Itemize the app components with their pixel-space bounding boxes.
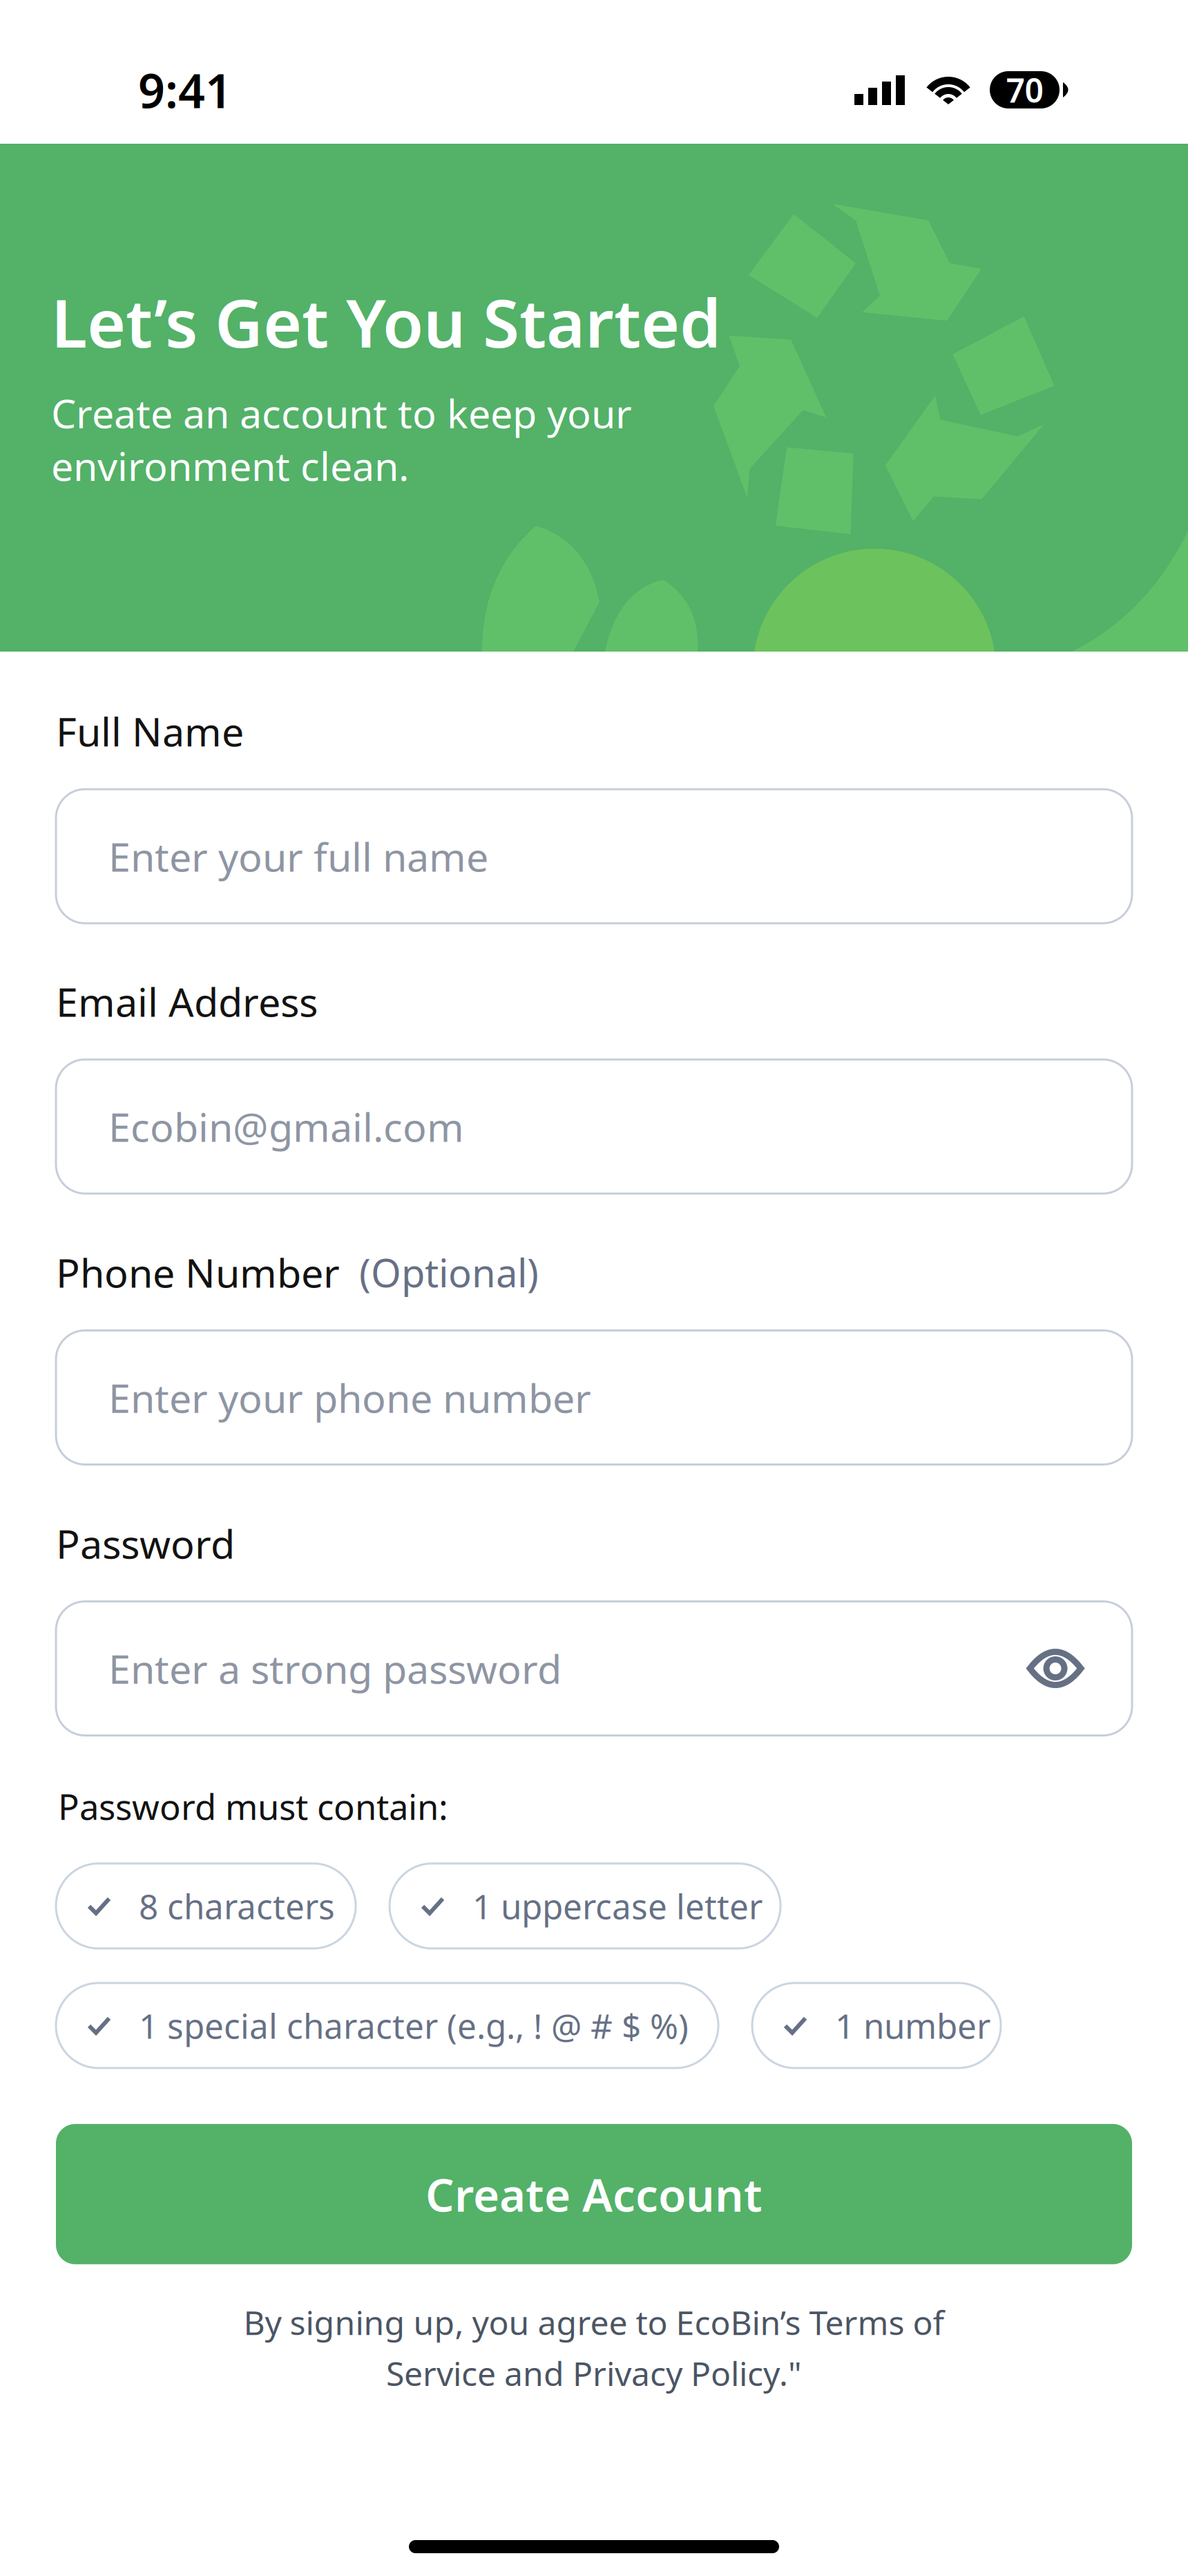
staticText: Enter your full name: [108, 830, 488, 883]
staticText: Phone Number: [56, 1246, 340, 1299]
staticText: 70: [1006, 68, 1043, 112]
staticText: By signing up, you agree to EcoBin’s Ter…: [243, 2300, 945, 2344]
staticText: Create an account to keep your: [51, 387, 632, 439]
staticText: 1 special character (e.g., ! @ # $ %): [139, 2003, 689, 2048]
staticText: (Optional): [359, 1247, 539, 1298]
staticText: Ecobin@gmail.com: [108, 1100, 464, 1153]
staticText: Email Address: [56, 975, 318, 1028]
staticText: Service and Privacy Policy.": [386, 2351, 802, 2395]
staticText: Enter your phone number: [108, 1371, 591, 1424]
staticText: 1 number: [835, 2003, 990, 2048]
staticText: Enter a strong password: [108, 1642, 562, 1695]
staticText: Create Account: [425, 2164, 763, 2224]
staticText: 1 uppercase letter: [472, 1883, 763, 1929]
staticText: 9:41: [138, 59, 232, 121]
staticText: Password: [56, 1517, 235, 1570]
staticText: environment clean.: [51, 439, 409, 492]
button[interactable]: Show password: [1029, 1646, 1082, 1690]
staticText: Let’s Get You Started: [51, 278, 721, 366]
staticText: 8 characters: [139, 1883, 335, 1929]
button[interactable]: Create Account: [56, 2124, 1132, 2264]
staticText: Password must contain:: [58, 1783, 448, 1830]
staticText: Full Name: [56, 705, 244, 757]
